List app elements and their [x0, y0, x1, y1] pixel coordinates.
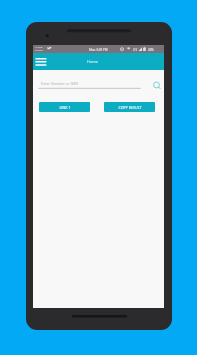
button[interactable]: Open navigation menu [34, 53, 50, 70]
staticText: 0.0 KB/s [35, 49, 43, 52]
staticText: 40% [148, 48, 154, 52]
staticText: LTE [133, 48, 138, 52]
staticText: Home [87, 59, 99, 64]
button[interactable]: COPY RESULT [104, 102, 155, 112]
button[interactable]: Search [150, 79, 163, 92]
staticText: LINK 1 [59, 105, 71, 110]
staticText: 12 mBs [35, 46, 43, 49]
staticText: Mon 3:29 PM [89, 48, 108, 52]
staticText: Enter Number or IMEI [41, 81, 79, 86]
staticText: COPY RESULT [118, 105, 142, 110]
button[interactable]: LINK 1 [39, 102, 90, 112]
